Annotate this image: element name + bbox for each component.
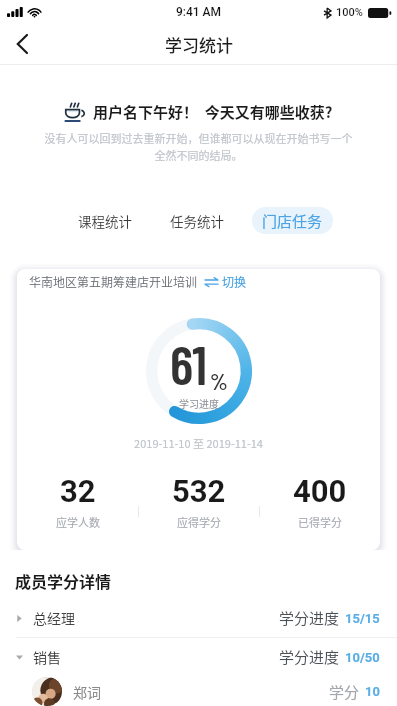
staticText: 学分进度	[279, 607, 340, 629]
staticText: 郑词	[73, 682, 101, 702]
staticText: 总经理	[33, 608, 75, 628]
button[interactable]: 课程统计	[78, 207, 132, 234]
button[interactable]: 总经理	[0, 599, 397, 637]
button[interactable]: 门店任务	[252, 207, 333, 234]
staticText: 已得学分	[298, 514, 342, 530]
staticText: 10	[365, 684, 380, 699]
staticText: 门店任务	[262, 210, 323, 232]
staticText: 华南地区第五期筹建店开业培训	[29, 273, 198, 290]
staticText: 成员学分详情	[15, 569, 112, 592]
staticText: 切换	[222, 273, 247, 290]
staticText: 32	[60, 473, 96, 509]
button[interactable]: 销售	[0, 638, 397, 676]
staticText: 应得学分	[177, 514, 221, 530]
staticText: 532	[172, 473, 226, 509]
staticText: 9:41 AM	[176, 5, 222, 19]
staticText: 学分	[329, 681, 360, 703]
staticText: 销售	[33, 647, 61, 667]
staticText: 学习进度	[179, 396, 219, 410]
staticText: 10/50	[345, 650, 380, 665]
button[interactable]: 任务统计	[170, 207, 224, 234]
button[interactable]: 郑词	[0, 677, 397, 706]
staticText: 学分进度	[279, 646, 340, 668]
staticText: 课程统计	[78, 211, 132, 231]
staticText: 15/15	[345, 611, 380, 626]
staticText: 任务统计	[170, 211, 224, 231]
staticText: 没有人可以回到过去重新开始，但谁都可以从现在开始书写一个 全然不同的结局。	[0, 130, 397, 163]
staticText: %	[210, 367, 228, 395]
staticText: 用户名下午好！ 今天又有哪些收获?	[93, 101, 333, 123]
button[interactable]: 切换	[203, 271, 249, 292]
staticText: 400	[293, 473, 347, 509]
staticText: 61	[170, 331, 208, 396]
staticText: 100%	[336, 6, 363, 19]
staticText: 应学人数	[56, 514, 100, 530]
button[interactable]: Back	[0, 24, 44, 64]
staticText: 2019-11-10 至 2019-11-14	[17, 435, 380, 451]
staticText: 学习统计	[165, 32, 233, 57]
